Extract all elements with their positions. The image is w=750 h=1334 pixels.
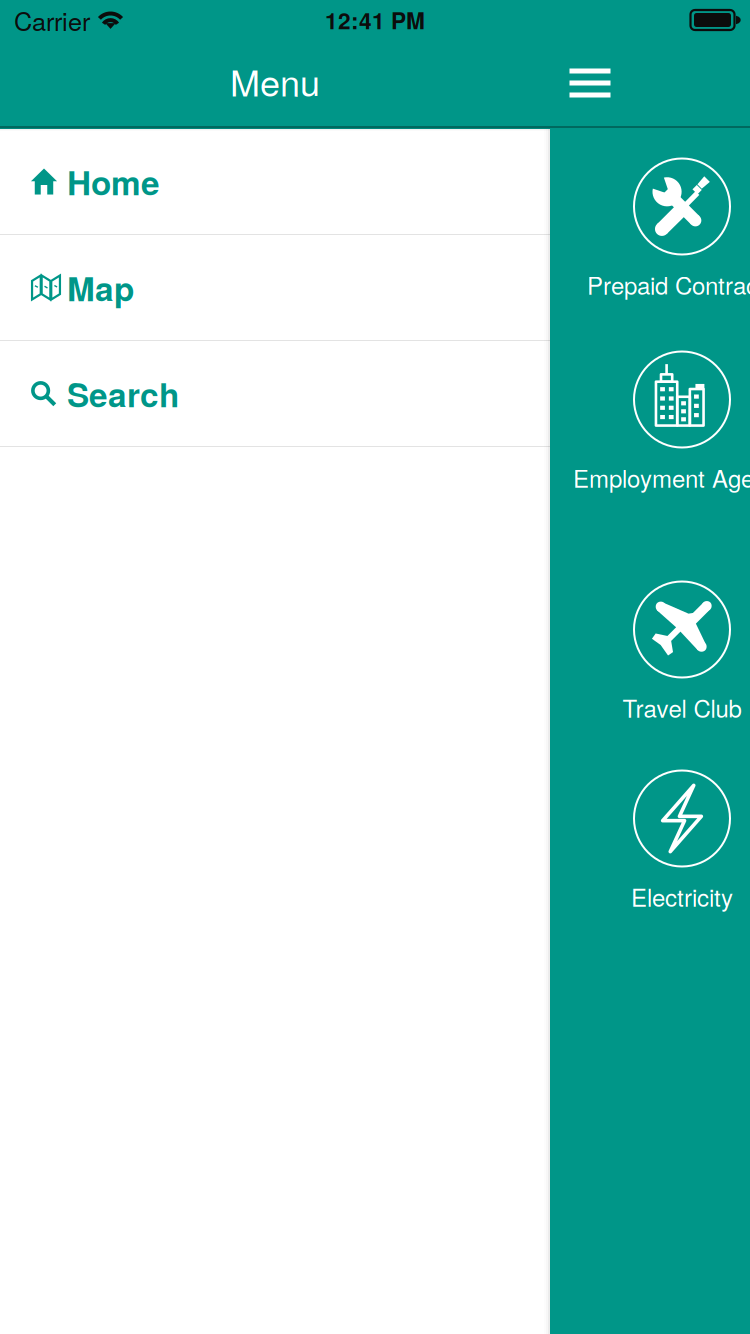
staticText: Search	[67, 370, 179, 417]
button[interactable]: Map	[0, 235, 550, 341]
staticText: Map	[67, 264, 134, 311]
staticText: Electricity	[631, 879, 733, 914]
staticText: 12:41 PM	[325, 4, 425, 36]
button[interactable]: Open menu	[542, 40, 638, 126]
button[interactable]: Home	[0, 129, 550, 235]
staticText: Prepaid Contracts	[587, 267, 750, 302]
staticText: Home	[67, 158, 160, 205]
staticText: Carrier	[14, 2, 90, 38]
staticText: Menu	[230, 55, 320, 107]
staticText: Travel Club	[622, 690, 741, 725]
staticText: Employment Agency	[573, 460, 750, 495]
button[interactable]: Search	[0, 341, 550, 447]
button[interactable]: Prepaid Contracts	[472, 158, 750, 299]
button[interactable]: Employment Agency	[472, 351, 750, 492]
button[interactable]: Travel Club	[472, 581, 750, 722]
button[interactable]: Electricity	[472, 770, 750, 911]
